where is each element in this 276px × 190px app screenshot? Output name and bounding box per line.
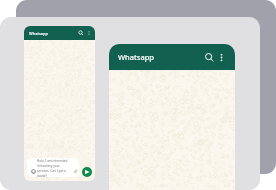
staticText: Hola, I am interested in booking your se… (37, 159, 69, 177)
button[interactable]: Send (82, 167, 92, 177)
staticText: Whatsapp (118, 52, 154, 62)
button[interactable]: More options (216, 52, 227, 63)
button[interactable]: Search (204, 52, 215, 63)
button[interactable]: Whatsapp (109, 44, 235, 70)
button[interactable]: Search (78, 30, 84, 36)
staticText: Whatsapp (29, 31, 48, 36)
button[interactable]: Whatsapp (24, 26, 95, 40)
button[interactable]: More options (86, 30, 92, 36)
button[interactable]: Hola, I am interested in booking your se… (27, 158, 79, 177)
